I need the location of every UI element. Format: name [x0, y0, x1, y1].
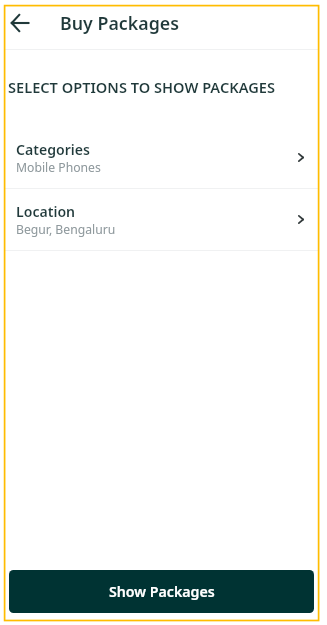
- staticText: SELECT OPTIONS TO SHOW PACKAGES: [8, 77, 275, 97]
- staticText: Mobile Phones: [16, 159, 101, 176]
- staticText: Location: [16, 202, 76, 221]
- staticText: Buy Packages: [60, 11, 179, 35]
- staticText: Begur, Bengaluru: [16, 221, 116, 238]
- button[interactable]: Back: [4, 7, 36, 39]
- button[interactable]: Categories: [5, 127, 319, 188]
- button[interactable]: Show Packages: [9, 570, 314, 613]
- button[interactable]: Location: [5, 189, 319, 250]
- staticText: Categories: [16, 140, 91, 159]
- staticText: Show Packages: [109, 582, 215, 601]
